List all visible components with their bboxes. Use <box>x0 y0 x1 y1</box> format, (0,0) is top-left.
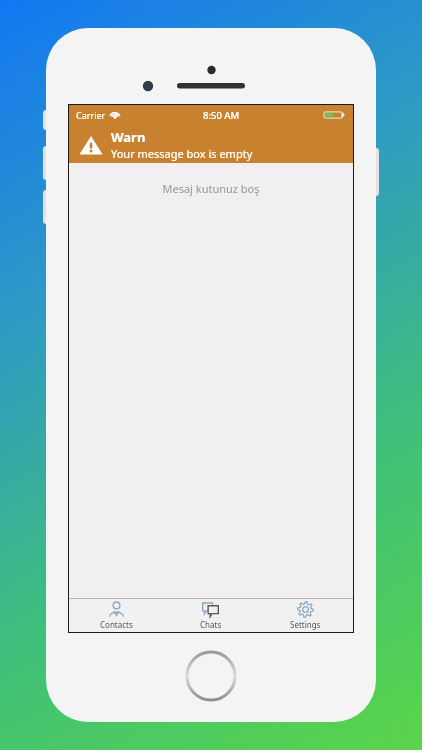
other: Chats <box>202 601 219 618</box>
staticText: 8:50 AM <box>203 109 240 122</box>
staticText: Mesaj kutunuz boş <box>162 181 260 196</box>
staticText: Carrier <box>76 109 106 121</box>
button[interactable]: Chats <box>163 598 258 632</box>
staticText: Settings <box>290 619 321 630</box>
other: Settings <box>297 601 314 618</box>
other: Contacts <box>108 601 125 618</box>
staticText: Warn <box>111 128 146 146</box>
button[interactable]: Settings <box>258 598 353 632</box>
button[interactable]: Warn <box>69 125 353 163</box>
staticText: Chats <box>200 619 222 630</box>
button[interactable]: Contacts <box>69 598 163 632</box>
staticText: Contacts <box>100 619 133 630</box>
staticText: Your message box is empty <box>111 146 253 161</box>
